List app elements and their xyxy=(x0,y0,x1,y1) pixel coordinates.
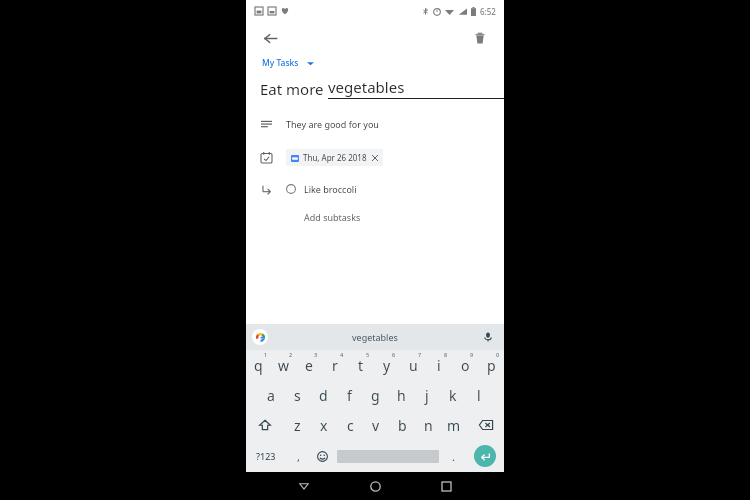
staticText: g xyxy=(371,386,380,405)
button[interactable]: h xyxy=(388,380,414,410)
button[interactable]: g xyxy=(362,380,388,410)
button[interactable]: Voice input xyxy=(480,329,496,345)
staticText: Add subtasks xyxy=(304,211,361,223)
button[interactable]: m xyxy=(441,410,467,440)
button[interactable]: Shift xyxy=(246,410,284,440)
staticText: z xyxy=(294,416,301,435)
staticText: 8 xyxy=(444,351,448,358)
staticText: Like broccoli xyxy=(304,183,357,195)
staticText: , xyxy=(297,449,300,464)
staticText: t xyxy=(358,356,364,375)
button[interactable]: Enter xyxy=(465,440,504,472)
button[interactable]: Recents xyxy=(433,473,459,499)
staticText: n xyxy=(424,416,433,435)
button[interactable]: My Tasks xyxy=(260,54,316,72)
button[interactable]: r xyxy=(322,350,348,380)
staticText: vegetables xyxy=(352,331,398,343)
button[interactable]: u xyxy=(400,350,426,380)
button[interactable]: x xyxy=(311,410,337,440)
staticText: 0 xyxy=(496,351,500,358)
button[interactable]: w xyxy=(271,350,296,380)
button[interactable]: e xyxy=(296,350,322,380)
button[interactable]: q xyxy=(246,350,271,380)
staticText: q xyxy=(254,356,263,375)
staticText: o xyxy=(461,356,470,375)
button[interactable]: ?123 xyxy=(246,440,286,472)
staticText: p xyxy=(487,356,496,375)
button[interactable]: c xyxy=(337,410,363,440)
staticText: 5 xyxy=(366,351,370,358)
staticText: vegetables xyxy=(328,77,405,97)
staticText: e xyxy=(305,356,313,375)
staticText: My Tasks xyxy=(262,57,299,69)
staticText: s xyxy=(294,386,301,405)
button[interactable]: p xyxy=(478,350,504,380)
staticText: 1 xyxy=(264,351,268,358)
button[interactable]: They are good for you xyxy=(246,114,504,134)
button[interactable]: . xyxy=(441,440,465,472)
button[interactable]: Back xyxy=(291,473,317,499)
button[interactable]: Add subtasks xyxy=(304,207,361,227)
staticText: 9 xyxy=(470,351,474,358)
button[interactable]: Backspace xyxy=(467,410,504,440)
staticText: Eat more xyxy=(260,79,328,99)
button[interactable]: k xyxy=(440,380,466,410)
button[interactable]: s xyxy=(284,380,310,410)
staticText: w xyxy=(278,356,290,375)
staticText: ?123 xyxy=(256,450,276,462)
staticText: v xyxy=(372,416,380,435)
staticText: . xyxy=(452,449,455,464)
button[interactable]: Home xyxy=(362,473,388,499)
button[interactable]: o xyxy=(452,350,478,380)
button[interactable]: Google xyxy=(252,329,268,345)
staticText: a xyxy=(267,386,275,405)
staticText: m xyxy=(447,416,461,435)
button[interactable]: d xyxy=(310,380,336,410)
staticText: 6 xyxy=(392,351,396,358)
button[interactable]: , xyxy=(286,440,310,472)
staticText: f xyxy=(347,386,352,405)
button[interactable]: l xyxy=(466,380,492,410)
staticText: b xyxy=(398,416,407,435)
staticText: 2 xyxy=(289,351,293,358)
staticText: d xyxy=(319,386,328,405)
button[interactable]: z xyxy=(284,410,311,440)
staticText: 3 xyxy=(314,351,318,358)
staticText: Thu, Apr 26 2018 xyxy=(303,152,367,163)
button[interactable]: Emoji xyxy=(310,440,334,472)
button[interactable]: n xyxy=(415,410,441,440)
staticText: r xyxy=(332,356,338,375)
button[interactable]: i xyxy=(426,350,452,380)
staticText: 7 xyxy=(418,351,422,358)
button[interactable]: a xyxy=(258,380,284,410)
button[interactable]: Delete xyxy=(468,26,492,50)
staticText: h xyxy=(397,386,406,405)
button[interactable]: y xyxy=(374,350,400,380)
staticText: They are good for you xyxy=(286,118,379,130)
staticText: y xyxy=(383,356,391,375)
staticText: i xyxy=(437,356,441,375)
staticText: l xyxy=(477,386,481,405)
other: Remove date xyxy=(372,155,378,161)
button[interactable]: b xyxy=(389,410,415,440)
staticText: c xyxy=(347,416,354,435)
button[interactable]: t xyxy=(348,350,374,380)
staticText: k xyxy=(449,386,457,405)
button[interactable]: Like broccoli xyxy=(246,178,504,200)
button[interactable]: Thu, Apr 26 2018 xyxy=(286,149,383,166)
button[interactable]: f xyxy=(336,380,362,410)
staticText: j xyxy=(425,386,429,405)
button[interactable]: Back xyxy=(258,26,282,50)
staticText: 6:52 xyxy=(480,6,496,17)
staticText: x xyxy=(320,416,328,435)
button[interactable]: Space xyxy=(334,440,441,472)
button[interactable]: j xyxy=(414,380,440,410)
staticText: 4 xyxy=(340,351,344,358)
staticText: u xyxy=(409,356,418,375)
button[interactable]: v xyxy=(363,410,389,440)
